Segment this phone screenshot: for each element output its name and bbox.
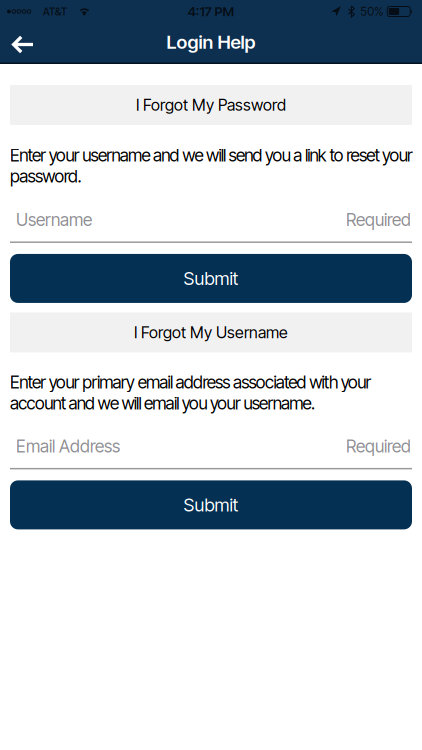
button[interactable]: I Forgot My Username <box>0 312 422 352</box>
button[interactable]: Email Address <box>0 436 422 469</box>
button[interactable]: I Forgot My Password <box>0 85 422 125</box>
staticText: AT&T <box>43 5 67 18</box>
button[interactable]: Submit <box>0 254 422 303</box>
staticText: Username <box>16 209 92 230</box>
staticText: 4:17 PM <box>187 4 234 19</box>
staticText: Submit <box>183 494 238 516</box>
staticText: 50% <box>360 4 383 19</box>
staticText: Enter your primary email address associa… <box>10 372 372 413</box>
staticText: I Forgot My Username <box>134 323 288 342</box>
button[interactable]: Username <box>0 209 422 243</box>
button[interactable]: Back <box>0 26 34 58</box>
staticText: I Forgot My Password <box>136 96 286 114</box>
staticText: Required <box>346 436 411 456</box>
staticText: Email Address <box>16 436 120 456</box>
button[interactable]: Submit <box>0 480 422 529</box>
staticText: Required <box>346 209 411 230</box>
staticText: Enter your username and we will send you… <box>10 145 413 186</box>
staticText: Login Help <box>166 31 255 53</box>
staticText: Submit <box>183 268 238 289</box>
